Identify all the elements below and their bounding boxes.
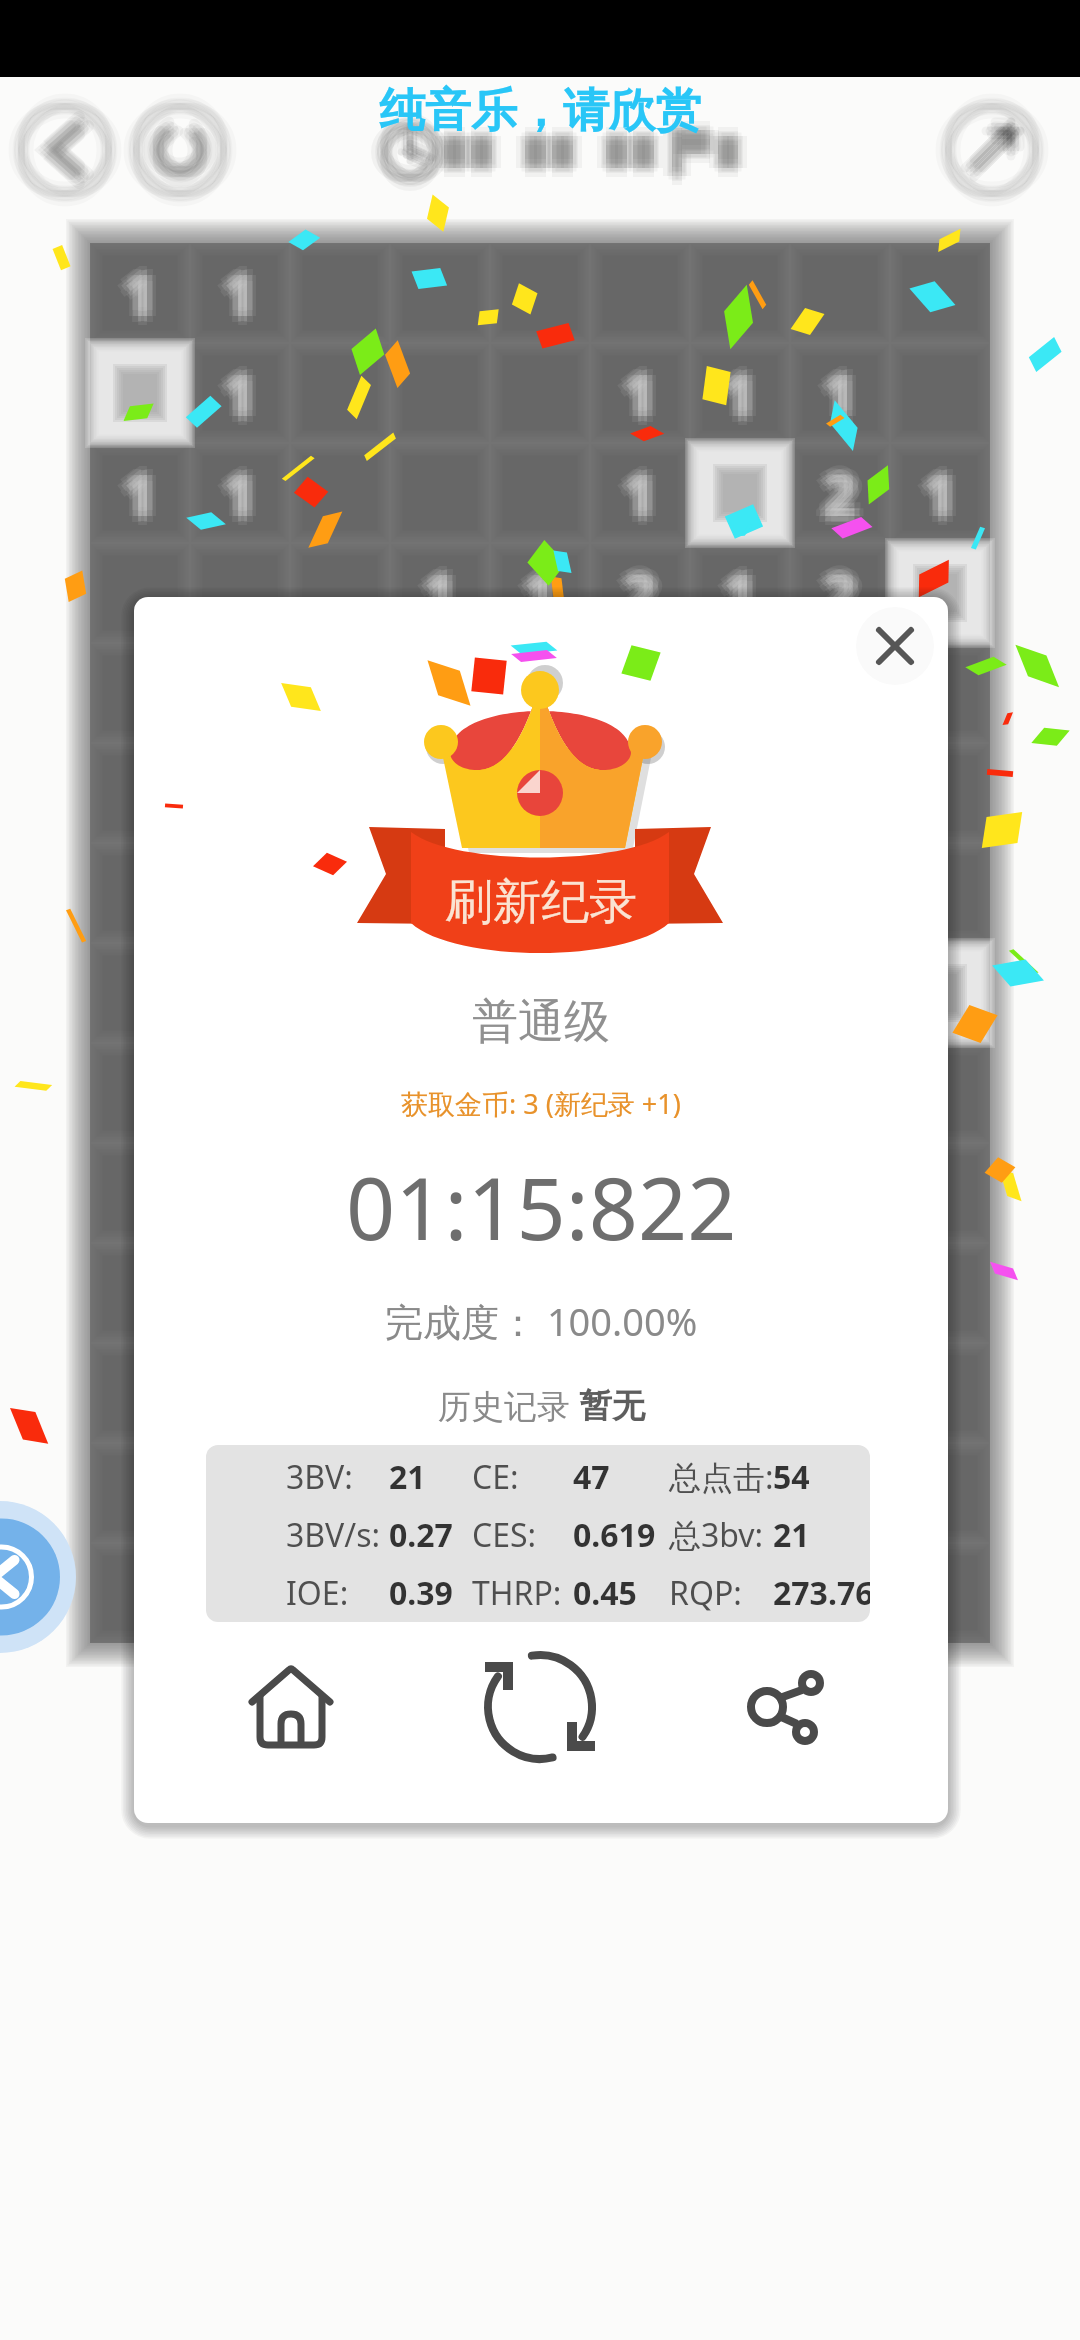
staticText: 2 (823, 454, 857, 533)
staticText: 1 (129, 248, 163, 327)
staticText: 1 (629, 448, 663, 527)
staticText: 2 (814, 454, 848, 533)
staticText: 2 (829, 560, 863, 639)
staticText: 1 (214, 354, 248, 433)
staticText: CES: (472, 1513, 537, 1557)
staticText: 2 (823, 549, 857, 628)
staticText: 1 (228, 354, 262, 433)
staticText: 2 (623, 554, 657, 633)
staticText: 1 (618, 454, 652, 533)
staticText: 1 (428, 554, 462, 633)
staticText: 1 (232, 454, 266, 533)
staticText: 2 (814, 554, 848, 633)
staticText: 1 (232, 254, 266, 333)
staticText: 1 (128, 254, 162, 333)
staticText: 2 (623, 559, 657, 638)
staticText: 1 (123, 259, 157, 338)
staticText: 1 (717, 348, 751, 427)
staticText: 1 (728, 354, 762, 433)
staticText: 1 (718, 554, 752, 633)
staticText: 1 (814, 354, 848, 433)
staticText: 1 (723, 363, 757, 442)
staticText: 2 (632, 554, 666, 633)
staticText: 1 (129, 448, 163, 527)
staticText: 2 (823, 545, 857, 624)
staticText: 1 (918, 454, 952, 533)
staticText: 1 (223, 463, 257, 542)
staticText: 1 (217, 360, 251, 439)
staticText: 1 (523, 554, 557, 633)
staticText: 1 (217, 260, 251, 339)
staticText: 1 (729, 360, 763, 439)
staticText: 1 (123, 245, 157, 324)
staticText: 1 (929, 460, 963, 539)
staticText: 2 (823, 554, 857, 633)
staticText: 1 (823, 349, 857, 428)
staticText: 1 (928, 454, 962, 533)
staticText: 1 (423, 559, 457, 638)
staticText: 获取金币: 3 (新纪录 +1) (401, 1085, 681, 1122)
staticText: 1 (723, 545, 757, 624)
staticText: 1 (617, 360, 651, 439)
staticText: 普通级 (472, 993, 610, 1051)
button[interactable]: Close (856, 607, 934, 685)
staticText: 1 (929, 448, 963, 527)
staticText: 1 (229, 360, 263, 439)
button[interactable]: Restart (470, 1637, 610, 1777)
staticText: 1 (414, 554, 448, 633)
staticText: 1 (614, 454, 648, 533)
staticText: 1 (132, 254, 166, 333)
staticText: THRP: (472, 1571, 562, 1615)
staticText: 1 (617, 460, 651, 539)
staticText: 2 (828, 454, 862, 533)
staticText: 1 (218, 254, 252, 333)
staticText: 2 (823, 449, 857, 528)
staticText: 2 (832, 454, 866, 533)
staticText: 1 (714, 354, 748, 433)
staticText: 1 (123, 254, 157, 333)
staticText: 1 (223, 354, 257, 433)
staticText: 1 (717, 360, 751, 439)
staticText: 2 (828, 554, 862, 633)
staticText: 2 (623, 549, 657, 628)
staticText: 1 (223, 345, 257, 424)
staticText: 2 (829, 460, 863, 539)
staticText: 1 (123, 263, 157, 342)
staticText: 2 (617, 560, 651, 639)
staticText: 273.76 (773, 1571, 870, 1615)
staticText: 1 (118, 454, 152, 533)
button[interactable]: Home (221, 1637, 361, 1777)
staticText: 1 (717, 560, 751, 639)
staticText: 2 (614, 554, 648, 633)
staticText: 1 (723, 345, 757, 424)
staticText: 1 (629, 360, 663, 439)
staticText: 1 (232, 354, 266, 433)
staticText: 1 (514, 554, 548, 633)
staticText: 1 (828, 354, 862, 433)
staticText: 1 (429, 548, 463, 627)
button[interactable]: Back (0, 1501, 76, 1653)
staticText: 1 (629, 348, 663, 427)
staticText: RQP: (669, 1571, 742, 1615)
staticText: 2 (818, 454, 852, 533)
staticText: 1 (723, 359, 757, 438)
staticText: 1 (823, 354, 857, 433)
staticText: 1 (617, 348, 651, 427)
staticText: 1 (523, 545, 557, 624)
staticText: 1 (417, 548, 451, 627)
staticText: 1 (217, 448, 251, 527)
staticText: 1 (628, 354, 662, 433)
button[interactable]: Share (714, 1637, 854, 1777)
staticText: 1 (223, 259, 257, 338)
staticText: 1 (129, 460, 163, 539)
staticText: 21 (389, 1455, 426, 1499)
staticText: 1 (628, 454, 662, 533)
staticText: 1 (914, 454, 948, 533)
staticText: 1 (729, 560, 763, 639)
staticText: IOE: (286, 1571, 349, 1615)
staticText: 1 (723, 354, 757, 433)
staticText: 2 (618, 554, 652, 633)
staticText: 1 (629, 460, 663, 539)
staticText: 1 (223, 445, 257, 524)
staticText: 总点击: (669, 1455, 774, 1499)
